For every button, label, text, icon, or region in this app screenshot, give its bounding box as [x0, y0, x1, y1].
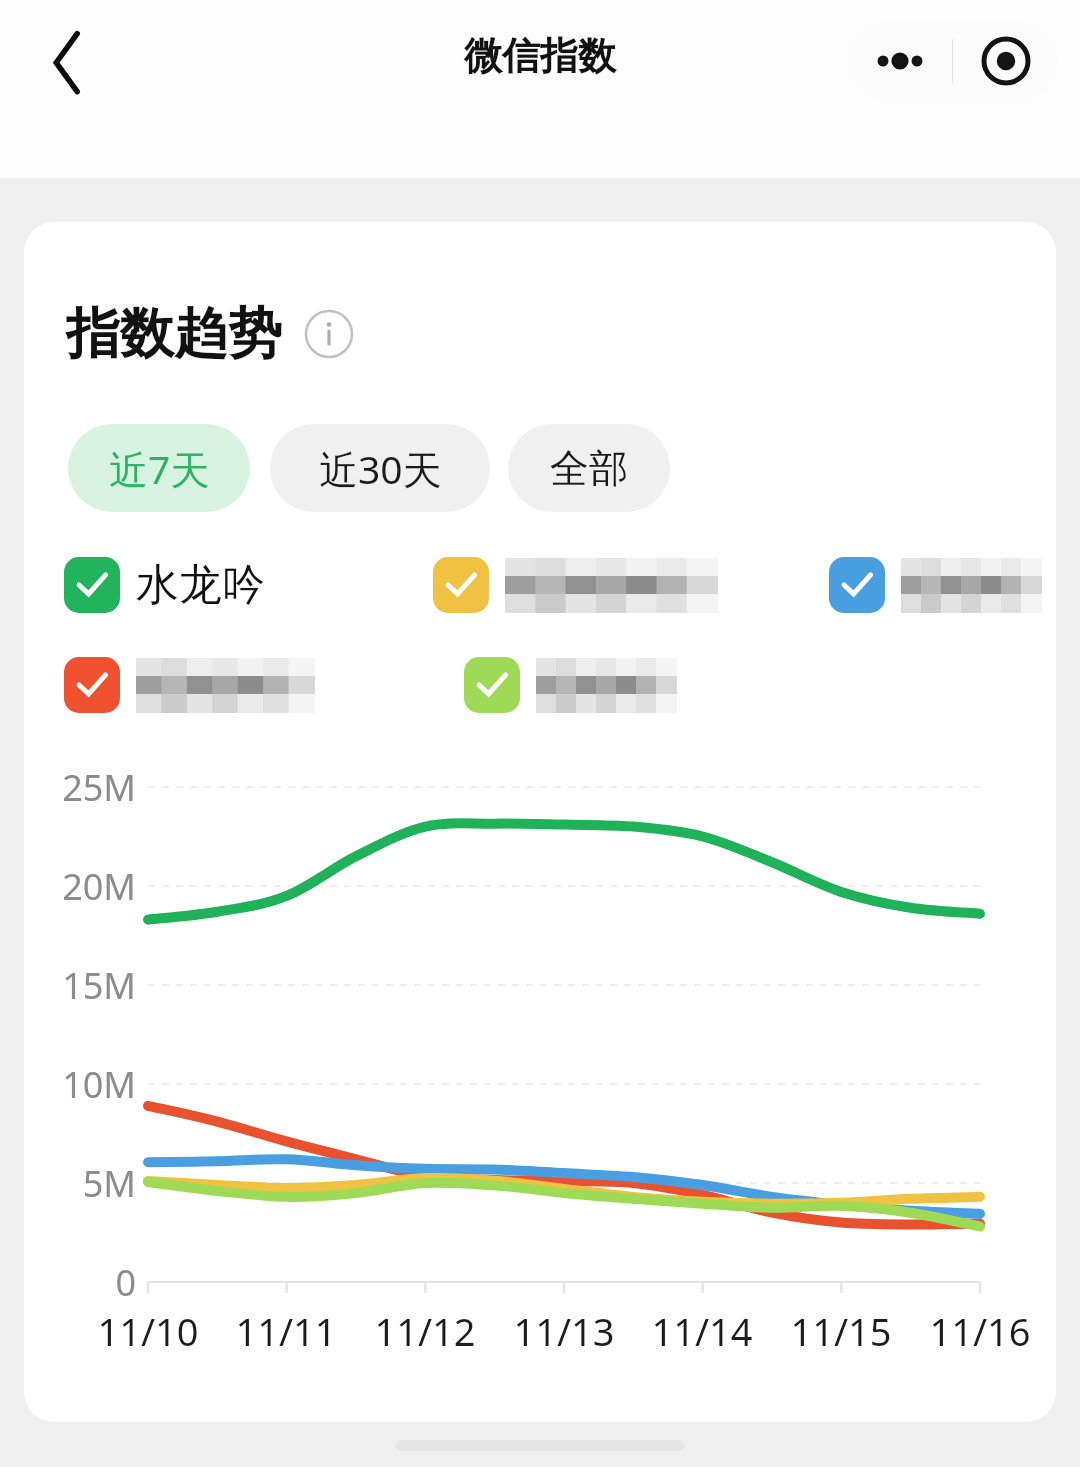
- staticText: 5M: [82, 1159, 136, 1208]
- button[interactable]: More options: [848, 22, 952, 100]
- button[interactable]: [64, 657, 314, 713]
- staticText: 11/15: [790, 1305, 892, 1357]
- staticText: 10M: [62, 1060, 136, 1109]
- staticText: 近30天: [319, 442, 442, 495]
- button[interactable]: Close: [953, 22, 1058, 100]
- staticText: 25M: [62, 763, 136, 812]
- button[interactable]: 水龙吟: [64, 557, 265, 613]
- staticText: 11/11: [235, 1305, 337, 1357]
- staticText: 近7天: [109, 442, 210, 495]
- staticText: 11/14: [651, 1305, 753, 1357]
- button[interactable]: Back: [22, 18, 108, 104]
- staticText: 水龙吟: [136, 558, 265, 612]
- button[interactable]: [829, 557, 1041, 613]
- button[interactable]: Info: [304, 309, 354, 359]
- staticText: 11/12: [374, 1305, 476, 1357]
- staticText: 20M: [62, 862, 136, 911]
- button[interactable]: 近7天: [68, 424, 250, 512]
- button[interactable]: 全部: [508, 424, 670, 512]
- staticText: 15M: [62, 961, 136, 1010]
- staticText: 全部: [550, 444, 628, 493]
- button[interactable]: [464, 657, 676, 713]
- staticText: 11/13: [513, 1305, 615, 1357]
- staticText: 11/16: [929, 1305, 1031, 1357]
- staticText: 11/10: [97, 1305, 199, 1357]
- staticText: 微信指数: [464, 32, 616, 80]
- staticText: 指数趋势: [66, 300, 282, 368]
- button[interactable]: [433, 557, 717, 613]
- staticText: 0: [115, 1258, 136, 1307]
- button[interactable]: 近30天: [270, 424, 490, 512]
